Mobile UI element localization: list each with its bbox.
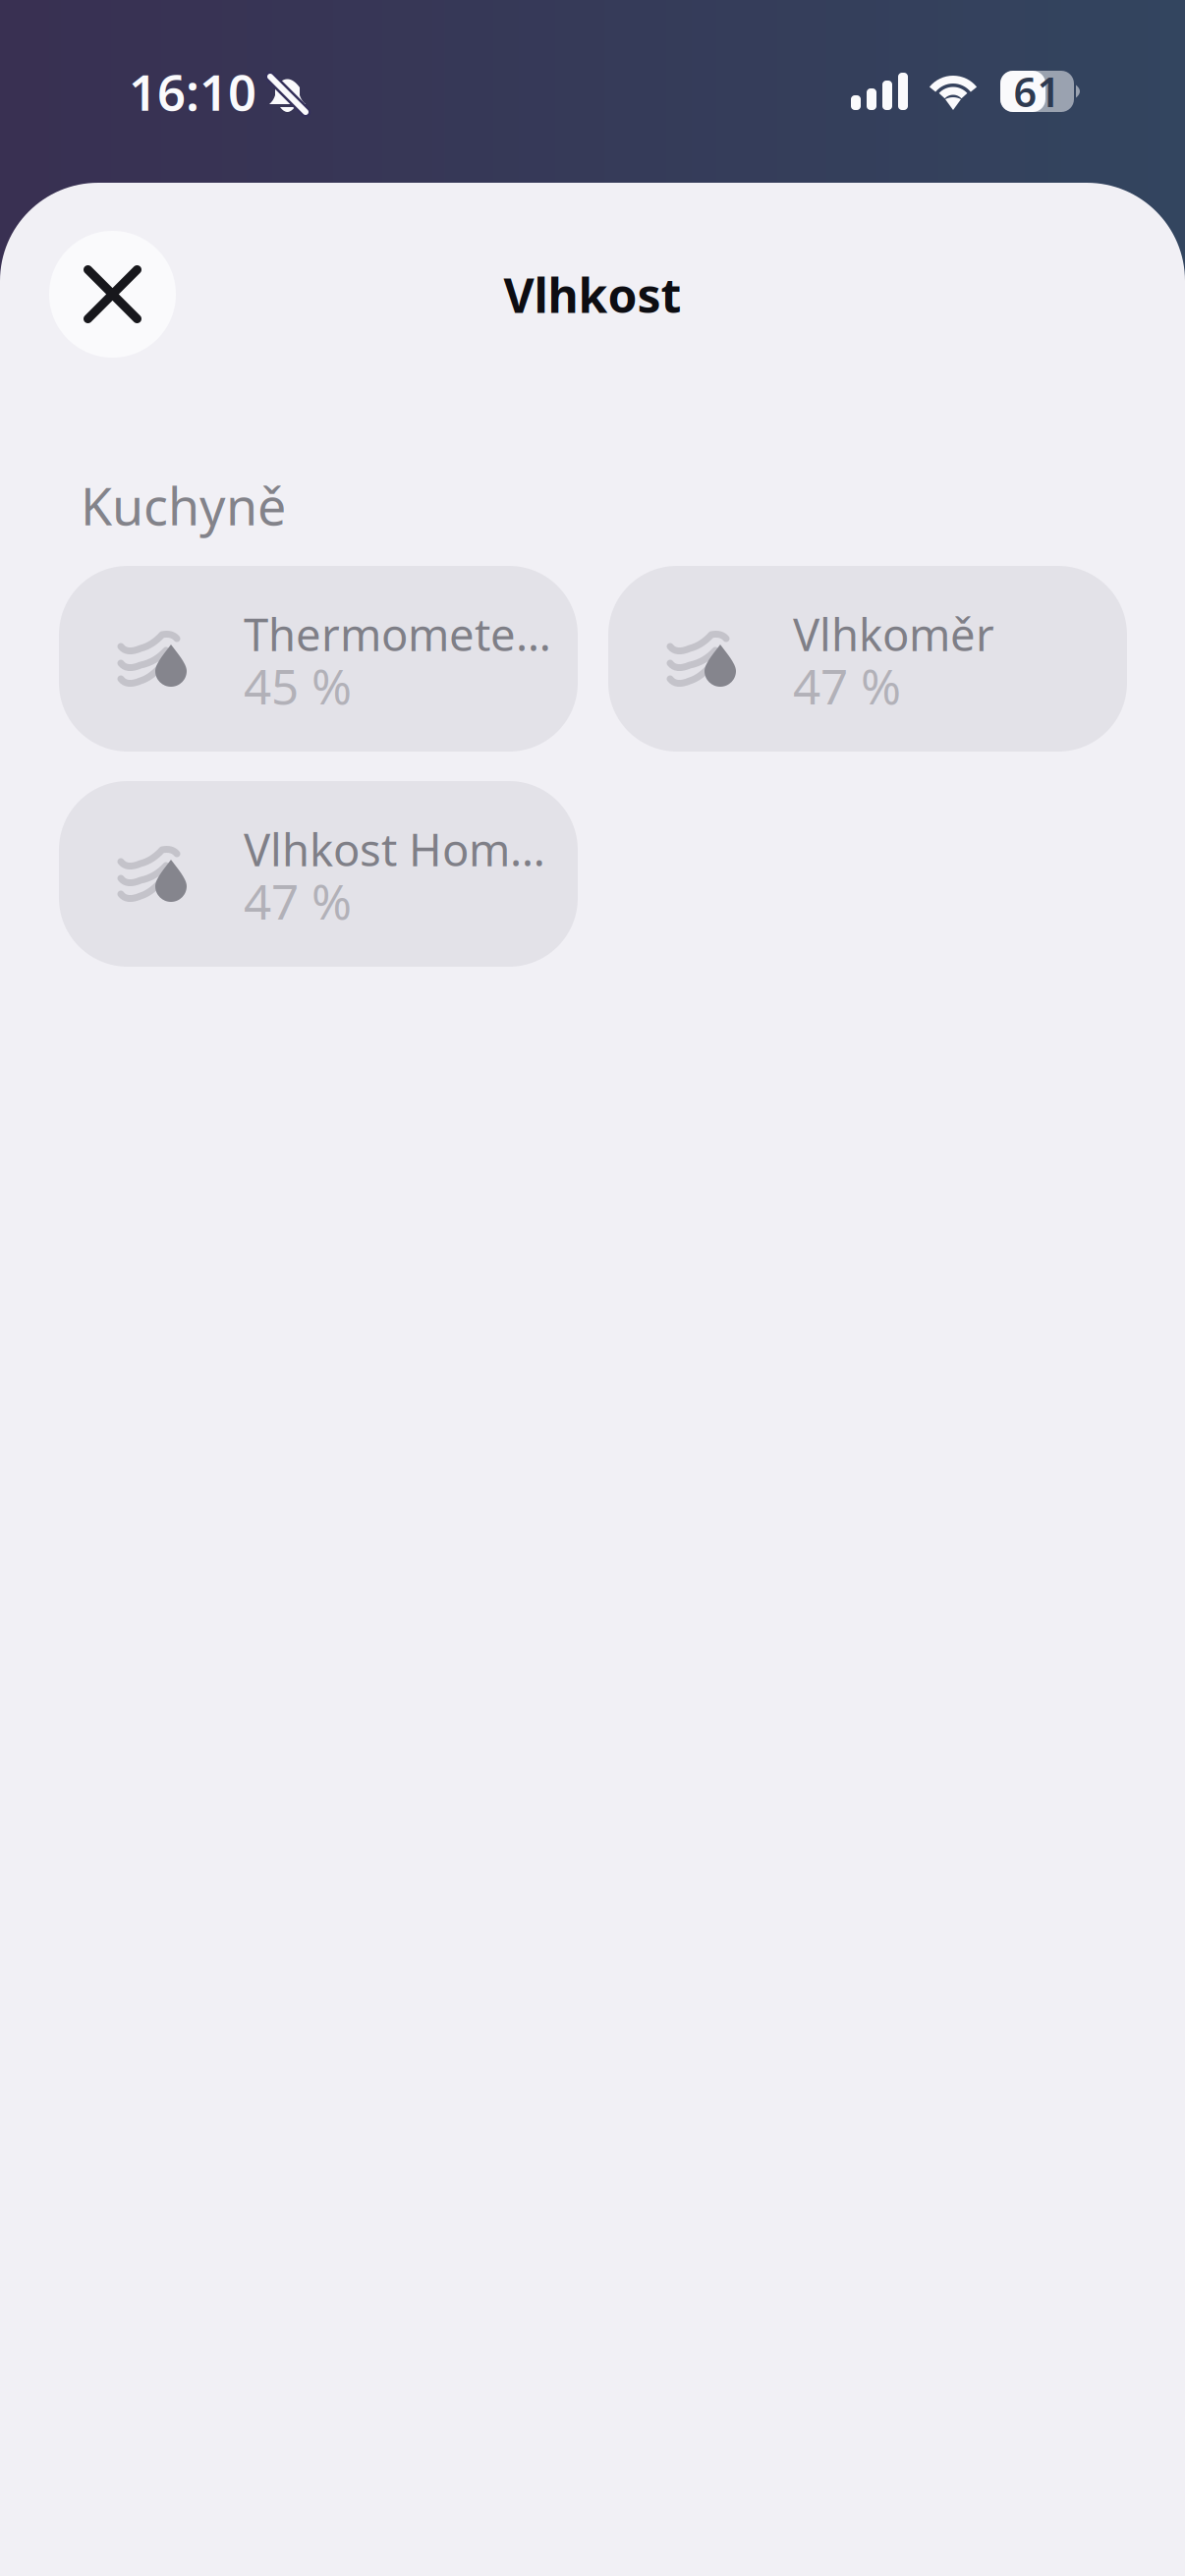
staticText: Kuchyně <box>81 472 286 539</box>
button[interactable]: Thermomete… <box>59 566 578 752</box>
staticText: Vlhkoměr <box>793 604 994 663</box>
button[interactable]: Vlhkost Hom… <box>59 781 578 967</box>
staticText: Thermomete… <box>244 604 551 663</box>
button[interactable]: Close <box>49 231 176 358</box>
staticText: 47 % <box>793 653 901 718</box>
staticText: 61 <box>1014 64 1061 118</box>
staticText: Vlhkost Hom… <box>244 819 545 879</box>
button[interactable]: Vlhkoměr <box>608 566 1127 752</box>
staticText: 16:10 <box>129 58 256 124</box>
staticText: 45 % <box>244 653 352 718</box>
staticText: Vlhkost <box>504 263 681 326</box>
staticText: 47 % <box>244 868 352 933</box>
